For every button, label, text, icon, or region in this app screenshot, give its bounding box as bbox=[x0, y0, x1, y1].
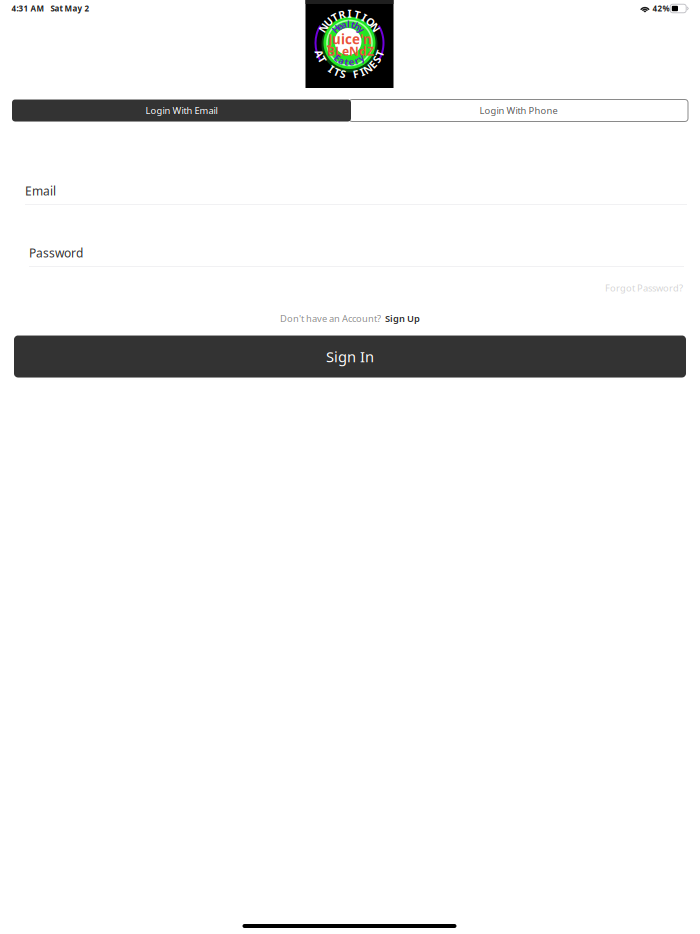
staticText: I bbox=[360, 65, 364, 79]
staticText: I bbox=[329, 62, 333, 76]
staticText: e bbox=[348, 56, 354, 68]
staticText: BLeNdZ bbox=[327, 43, 374, 59]
staticText: R bbox=[338, 7, 345, 22]
button[interactable]: Login With Phone bbox=[349, 99, 688, 121]
staticText: N bbox=[371, 20, 380, 35]
staticText: Forgot Password? bbox=[605, 282, 683, 294]
button[interactable]: Password bbox=[29, 243, 684, 267]
staticText: l bbox=[347, 18, 350, 30]
staticText: Sign In bbox=[326, 347, 374, 366]
staticText: 4:31 AM bbox=[11, 3, 44, 14]
button[interactable]: Forgot Password? bbox=[605, 282, 683, 294]
staticText: N bbox=[319, 20, 328, 35]
staticText: y bbox=[359, 23, 364, 35]
staticText: t bbox=[344, 56, 348, 68]
staticText: Login With Phone bbox=[479, 104, 557, 117]
staticText: t bbox=[351, 18, 355, 31]
staticText: O bbox=[366, 15, 374, 29]
staticText: U bbox=[324, 15, 332, 29]
staticText: T bbox=[354, 7, 360, 22]
staticText bbox=[325, 57, 328, 72]
staticText: e bbox=[337, 20, 343, 32]
staticText: T bbox=[377, 46, 383, 61]
staticText: r bbox=[354, 54, 358, 67]
staticText: Juice'n bbox=[328, 30, 372, 48]
staticText: 42% bbox=[652, 3, 669, 14]
staticText: Password bbox=[29, 245, 83, 261]
staticText: F bbox=[353, 67, 359, 81]
staticText: A bbox=[316, 46, 323, 61]
staticText: Don't have an Account? bbox=[280, 312, 381, 325]
staticText: Sat May 2 bbox=[50, 3, 89, 14]
staticText: Login With Email bbox=[145, 104, 217, 117]
staticText: T bbox=[319, 52, 325, 66]
button[interactable]: Login With Email bbox=[12, 99, 351, 121]
staticText: E bbox=[335, 52, 340, 64]
staticText: I bbox=[347, 6, 351, 21]
staticText: h bbox=[354, 20, 360, 32]
staticText: S bbox=[340, 67, 346, 81]
staticText: H bbox=[332, 23, 339, 35]
button[interactable]: Sign Up bbox=[385, 312, 420, 325]
staticText: T bbox=[332, 10, 338, 24]
staticText: Sign Up bbox=[385, 312, 420, 325]
staticText: E bbox=[370, 57, 376, 72]
staticText: a bbox=[341, 18, 347, 31]
staticText: Email bbox=[25, 183, 56, 199]
staticText: N bbox=[363, 62, 372, 76]
staticText: T bbox=[334, 65, 340, 79]
staticText: y bbox=[358, 52, 363, 64]
staticText: a bbox=[339, 54, 345, 67]
button[interactable]: Sign In bbox=[14, 335, 686, 377]
button[interactable]: Email bbox=[25, 181, 687, 205]
staticText: I bbox=[362, 10, 366, 24]
staticText bbox=[348, 67, 351, 82]
staticText: S bbox=[374, 52, 380, 66]
